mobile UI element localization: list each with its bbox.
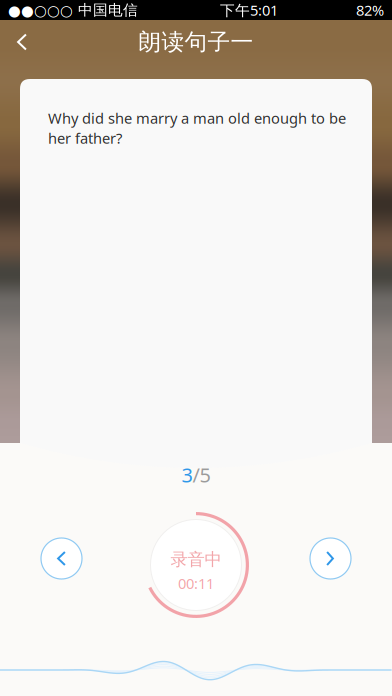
button[interactable]: Next sentence <box>310 538 351 579</box>
staticText: 朗读句子一 <box>138 28 253 56</box>
button[interactable]: Back <box>0 20 44 64</box>
staticText: Why did she marry a man old enough to be… <box>48 108 346 148</box>
staticText: 3 <box>181 461 192 488</box>
staticText: 录音中 <box>170 549 221 570</box>
staticText: /5 <box>192 461 210 488</box>
button[interactable]: Previous sentence <box>41 538 82 579</box>
staticText: 82% <box>356 0 384 20</box>
staticText: 00:11 <box>178 573 214 593</box>
staticText: ●●○○○ 中国电信 <box>8 1 142 19</box>
staticText: 下午5:01 <box>220 0 278 20</box>
button[interactable]: Recording, tap to stop <box>143 512 249 618</box>
